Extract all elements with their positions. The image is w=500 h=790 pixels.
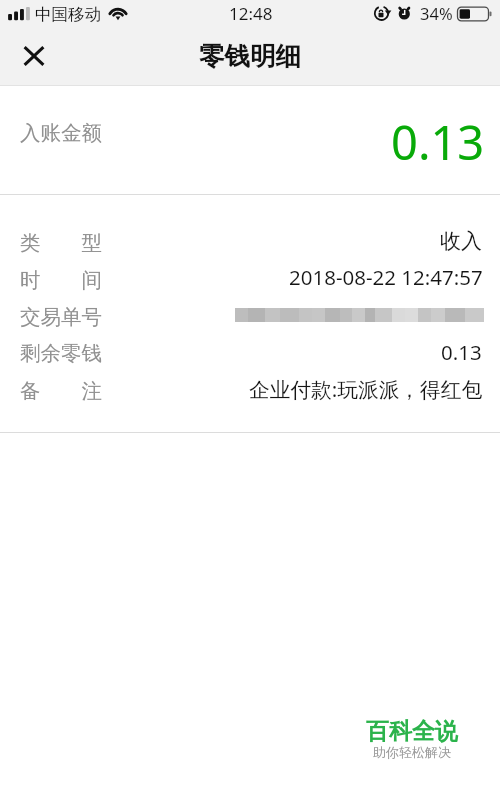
staticText: 交易单号 bbox=[20, 304, 102, 330]
staticText: 0.13 bbox=[441, 338, 482, 366]
button[interactable]: Close bbox=[14, 36, 54, 76]
staticText: 收入 bbox=[440, 228, 482, 254]
staticText: 34% bbox=[420, 2, 453, 24]
staticText: 备 注 bbox=[20, 376, 102, 404]
staticText: 中国移动 bbox=[35, 4, 101, 25]
staticText: 入账金额 bbox=[20, 120, 102, 146]
staticText: 企业付款:玩派派，得红包 bbox=[249, 375, 483, 403]
staticText: 剩余零钱 bbox=[20, 340, 102, 366]
staticText: 百科全说 bbox=[366, 717, 458, 746]
staticText: 类 型 bbox=[20, 228, 102, 256]
staticText: 助你轻松解决 bbox=[373, 744, 451, 760]
staticText: 时 间 bbox=[20, 265, 102, 293]
staticText: 零钱明细 bbox=[199, 40, 301, 72]
staticText: 2018-08-22 12:47:57 bbox=[289, 263, 483, 291]
staticText: 0.13 bbox=[391, 110, 485, 174]
staticText: 12:48 bbox=[229, 2, 273, 25]
